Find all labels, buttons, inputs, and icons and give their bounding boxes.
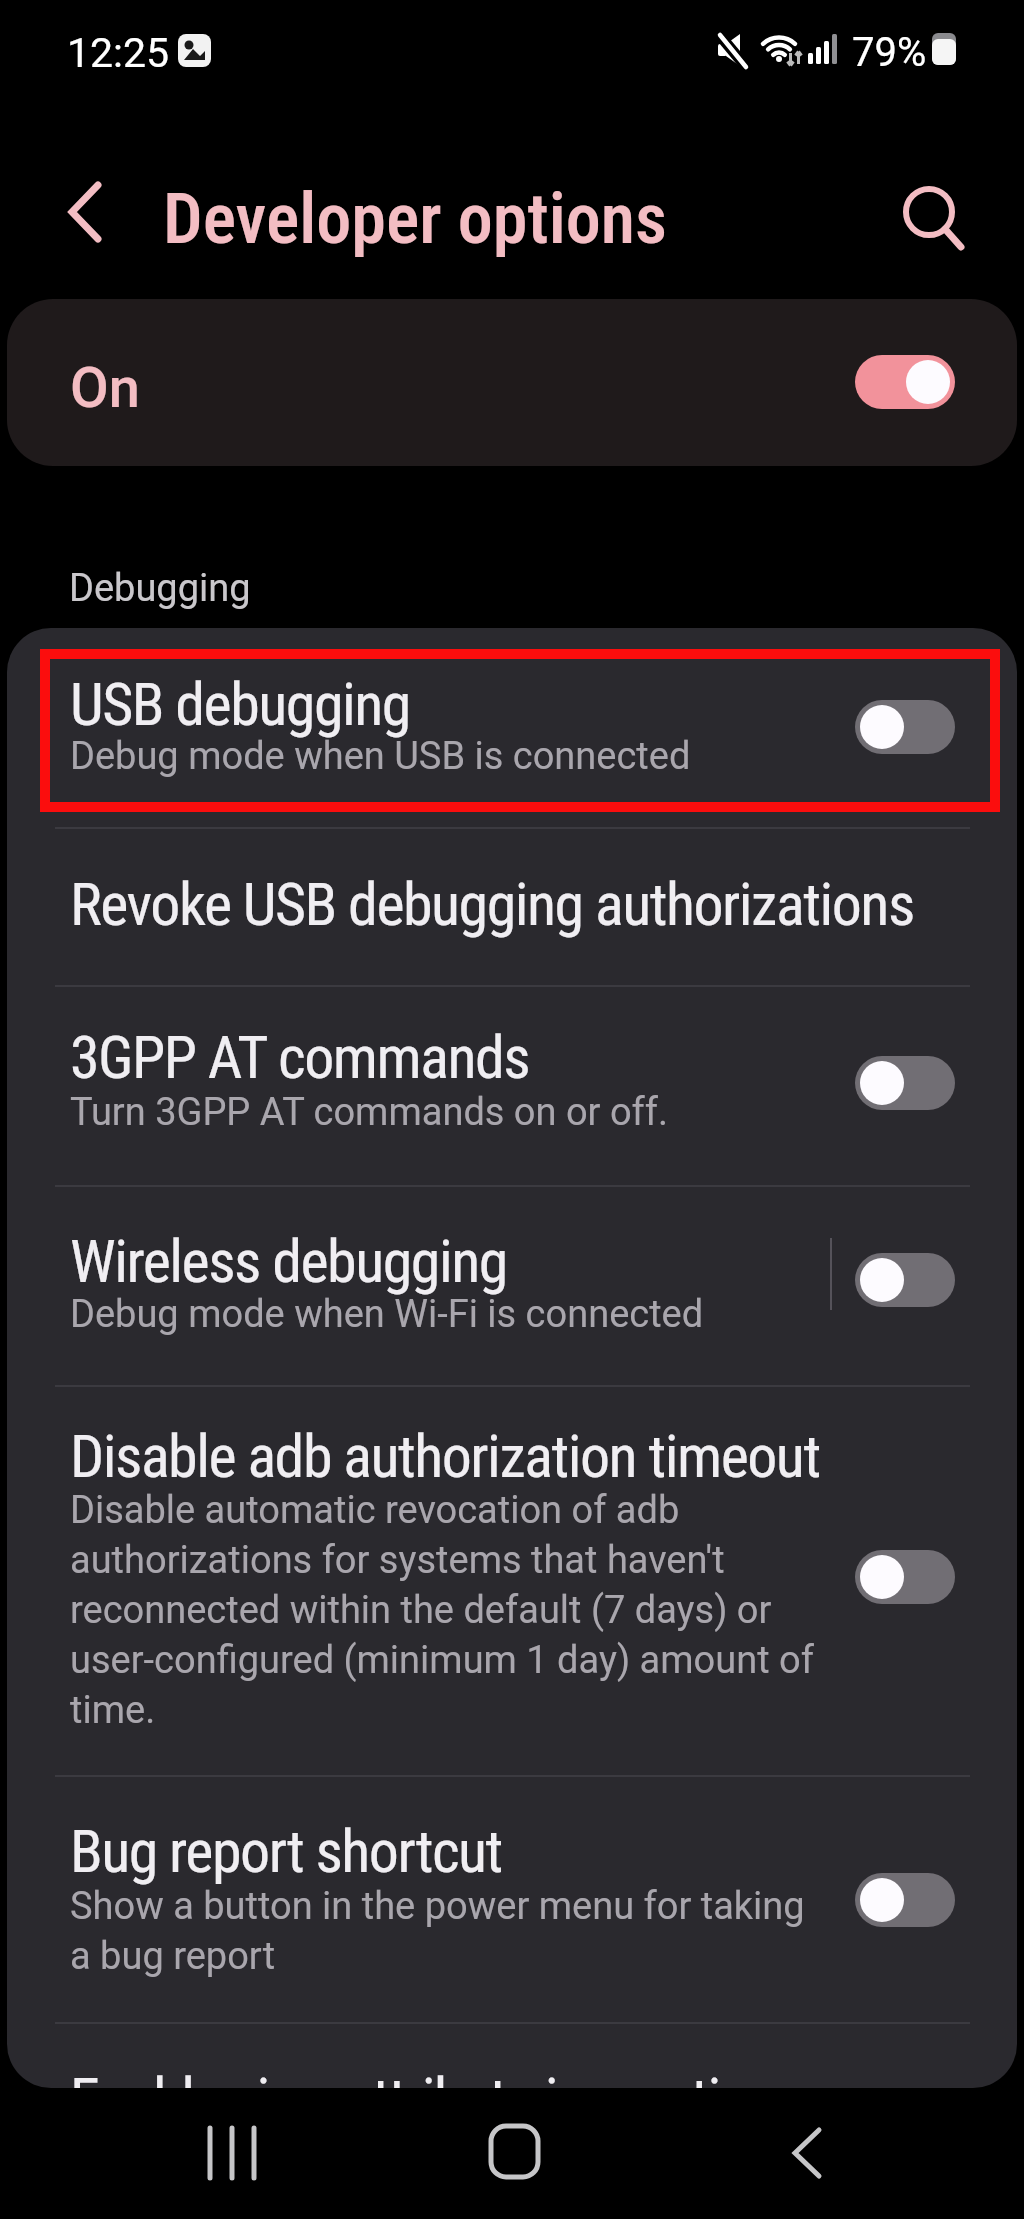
- button[interactable]: Enable view attribute inspection: [7, 2022, 1017, 2088]
- staticText: Wireless debugging: [70, 1226, 507, 1296]
- staticText: Debug mode when Wi-Fi is connected: [70, 1292, 704, 1337]
- staticText: Bug report shortcut: [70, 1816, 502, 1886]
- staticText: Debug mode when USB is connected: [70, 734, 691, 779]
- staticText: 3GPP AT commands: [70, 1022, 530, 1092]
- button[interactable]: [855, 1056, 955, 1110]
- button[interactable]: [855, 700, 955, 754]
- button[interactable]: Disable adb authorization timeout: [7, 1385, 1017, 1775]
- staticText: authorizations for systems that haven't: [70, 1538, 725, 1583]
- staticText: Debugging: [69, 566, 251, 611]
- staticText: Disable adb authorization timeout: [70, 1421, 820, 1491]
- staticText: Revoke USB debugging authorizations: [70, 869, 914, 939]
- staticText: reconnected within the default (7 days) …: [70, 1588, 772, 1633]
- staticText: Show a button in the power menu for taki…: [70, 1884, 805, 1929]
- staticText: 12:25: [67, 29, 170, 77]
- button[interactable]: [895, 178, 975, 258]
- button[interactable]: Bug report shortcut: [7, 1775, 1017, 2022]
- staticText: 79%: [852, 29, 927, 76]
- button[interactable]: [180, 2110, 280, 2200]
- button[interactable]: On: [7, 299, 1017, 466]
- button[interactable]: [855, 1253, 955, 1307]
- staticText: Enable view attribute inspection: [70, 2064, 777, 2088]
- staticText: Turn 3GPP AT commands on or off.: [70, 1090, 669, 1135]
- staticText: On: [70, 355, 140, 421]
- staticText: Disable automatic revocation of adb: [70, 1488, 680, 1533]
- staticText: Developer options: [163, 178, 667, 260]
- button[interactable]: USB debugging: [7, 642, 1017, 827]
- button[interactable]: 3GPP AT commands: [7, 985, 1017, 1185]
- button[interactable]: [465, 2110, 565, 2200]
- button[interactable]: [855, 355, 955, 409]
- button[interactable]: [855, 1550, 955, 1604]
- staticText: USB debugging: [70, 669, 410, 739]
- staticText: time.: [70, 1688, 156, 1733]
- button[interactable]: Wireless debugging: [7, 1185, 1017, 1385]
- staticText: user-configured (minimum 1 day) amount o…: [70, 1638, 814, 1683]
- button[interactable]: [855, 1873, 955, 1927]
- button[interactable]: Revoke USB debugging authorizations: [7, 827, 1017, 985]
- button[interactable]: [755, 2110, 855, 2200]
- staticText: a bug report: [70, 1934, 276, 1979]
- button[interactable]: [56, 180, 120, 246]
